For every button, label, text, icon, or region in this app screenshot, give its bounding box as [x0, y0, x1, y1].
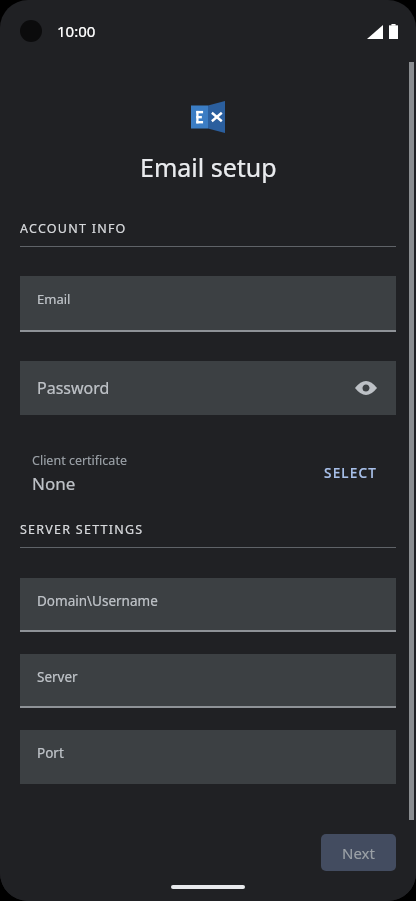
button[interactable]: Domain\Username: [20, 578, 396, 632]
staticText: Port: [37, 744, 64, 762]
button[interactable]: Password: [20, 361, 396, 415]
staticText: ACCOUNT INFO: [20, 220, 127, 237]
staticText: SERVER SETTINGS: [20, 521, 144, 538]
staticText: SELECT: [324, 464, 378, 482]
staticText: None: [32, 472, 76, 495]
button[interactable]: Server: [20, 654, 396, 708]
staticText: Email: [37, 290, 71, 308]
staticText: Password: [37, 377, 110, 399]
button[interactable]: SELECT: [318, 456, 384, 490]
staticText: Next: [342, 843, 375, 863]
staticText: Client certificate: [32, 452, 127, 469]
staticText: Domain\Username: [37, 592, 158, 610]
button[interactable]: Client certificate: [0, 445, 416, 501]
button[interactable]: Email: [20, 276, 396, 332]
button[interactable]: Show password: [348, 370, 384, 406]
button[interactable]: Next: [321, 834, 396, 871]
staticText: Server: [37, 668, 78, 686]
staticText: 10:00: [57, 21, 96, 41]
staticText: Email setup: [140, 150, 277, 184]
button[interactable]: Port: [20, 730, 396, 784]
